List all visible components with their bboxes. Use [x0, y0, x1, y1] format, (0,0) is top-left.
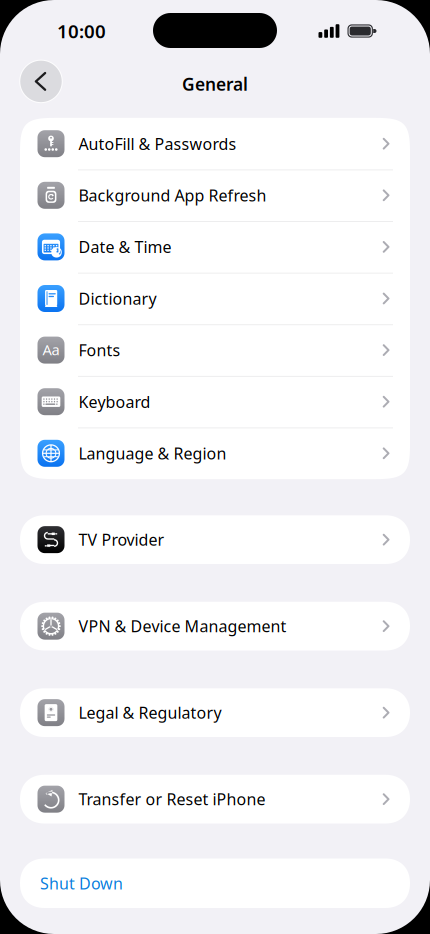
staticText: General [182, 72, 248, 95]
button[interactable]: VPN & Device Management [20, 602, 410, 650]
staticText: Shut Down [40, 873, 123, 894]
button[interactable]: TV Provider [20, 515, 410, 564]
button[interactable]: Aa [20, 324, 410, 376]
staticText: 10:00 [57, 19, 106, 43]
button[interactable]: Legal & Regulatory [20, 688, 410, 737]
staticText: Dictionary [78, 288, 156, 309]
button[interactable]: Language & Region [20, 427, 410, 479]
button[interactable]: Date & Time [20, 221, 410, 273]
staticText: TV Provider [78, 529, 164, 550]
staticText: Legal & Regulatory [78, 702, 221, 723]
staticText: Transfer or Reset iPhone [78, 788, 265, 810]
staticText: Language & Region [78, 443, 226, 464]
button[interactable]: Background App Refresh [20, 169, 410, 221]
button[interactable]: Shut Down [20, 858, 410, 908]
staticText: Keyboard [78, 391, 150, 412]
staticText: Background App Refresh [78, 185, 266, 206]
button[interactable]: Back [19, 59, 63, 103]
button[interactable]: Dictionary [20, 273, 410, 324]
staticText: VPN & Device Management [78, 615, 286, 637]
staticText: Aa [42, 340, 59, 359]
staticText: Date & Time [78, 236, 171, 257]
button[interactable]: Keyboard [20, 376, 410, 427]
button[interactable]: AutoFill & Passwords [20, 118, 410, 169]
staticText: AutoFill & Passwords [78, 133, 236, 154]
staticText: Fonts [78, 339, 120, 361]
button[interactable]: Transfer or Reset iPhone [20, 775, 410, 823]
